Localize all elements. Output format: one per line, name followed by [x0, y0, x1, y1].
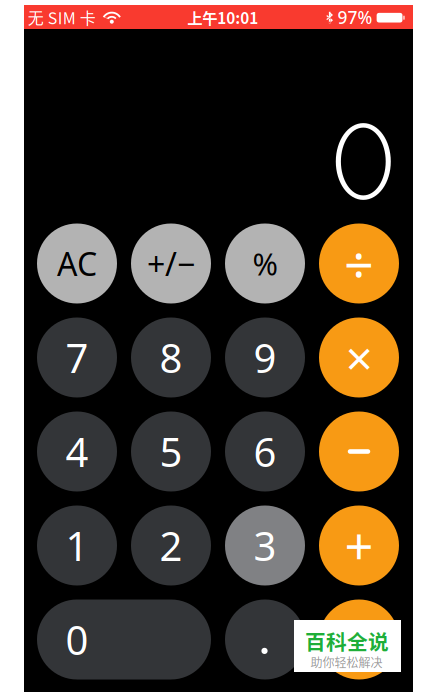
staticText: 无 SIM 卡 — [28, 6, 96, 29]
button[interactable]: 8 — [131, 317, 211, 397]
staticText: 1 — [65, 519, 88, 572]
staticText: + — [344, 512, 373, 579]
button[interactable]: = — [319, 599, 399, 679]
button[interactable]: 2 — [131, 505, 211, 585]
staticText: = — [344, 606, 373, 673]
staticText: +/− — [147, 242, 195, 285]
button[interactable]: 5 — [131, 411, 211, 491]
button[interactable]: Decimal point — [225, 599, 305, 679]
staticText: 97% — [337, 6, 372, 29]
staticText: 百科全说 — [305, 626, 389, 656]
button[interactable]: AC — [37, 223, 117, 303]
staticText: 3 — [253, 519, 276, 572]
button[interactable]: 1 — [37, 505, 117, 585]
staticText: 5 — [159, 425, 182, 478]
staticText: 上午10:01 — [187, 6, 258, 28]
button[interactable]: + — [319, 505, 399, 585]
button[interactable]: × — [319, 317, 399, 397]
staticText: × — [345, 326, 372, 389]
staticText: 8 — [159, 331, 182, 384]
staticText: 7 — [65, 331, 88, 384]
button[interactable]: 3 — [225, 505, 305, 585]
staticText: 助你轻松解决 — [310, 653, 382, 671]
staticText: 4 — [65, 425, 88, 478]
button[interactable]: ÷ — [319, 223, 399, 303]
button[interactable]: % — [225, 223, 305, 303]
staticText: % — [252, 243, 277, 284]
staticText: 0 — [65, 613, 88, 666]
button[interactable]: 7 — [37, 317, 117, 397]
button[interactable]: +/− — [131, 223, 211, 303]
button[interactable]: Minus — [319, 411, 399, 491]
button[interactable]: 9 — [225, 317, 305, 397]
button[interactable]: 4 — [37, 411, 117, 491]
button[interactable]: 0 — [37, 599, 211, 679]
staticText: 2 — [159, 519, 182, 572]
staticText: 9 — [253, 331, 276, 384]
button[interactable]: 6 — [225, 411, 305, 491]
staticText: 6 — [253, 425, 276, 478]
staticText: ÷ — [344, 229, 374, 298]
staticText: AC — [57, 242, 97, 285]
